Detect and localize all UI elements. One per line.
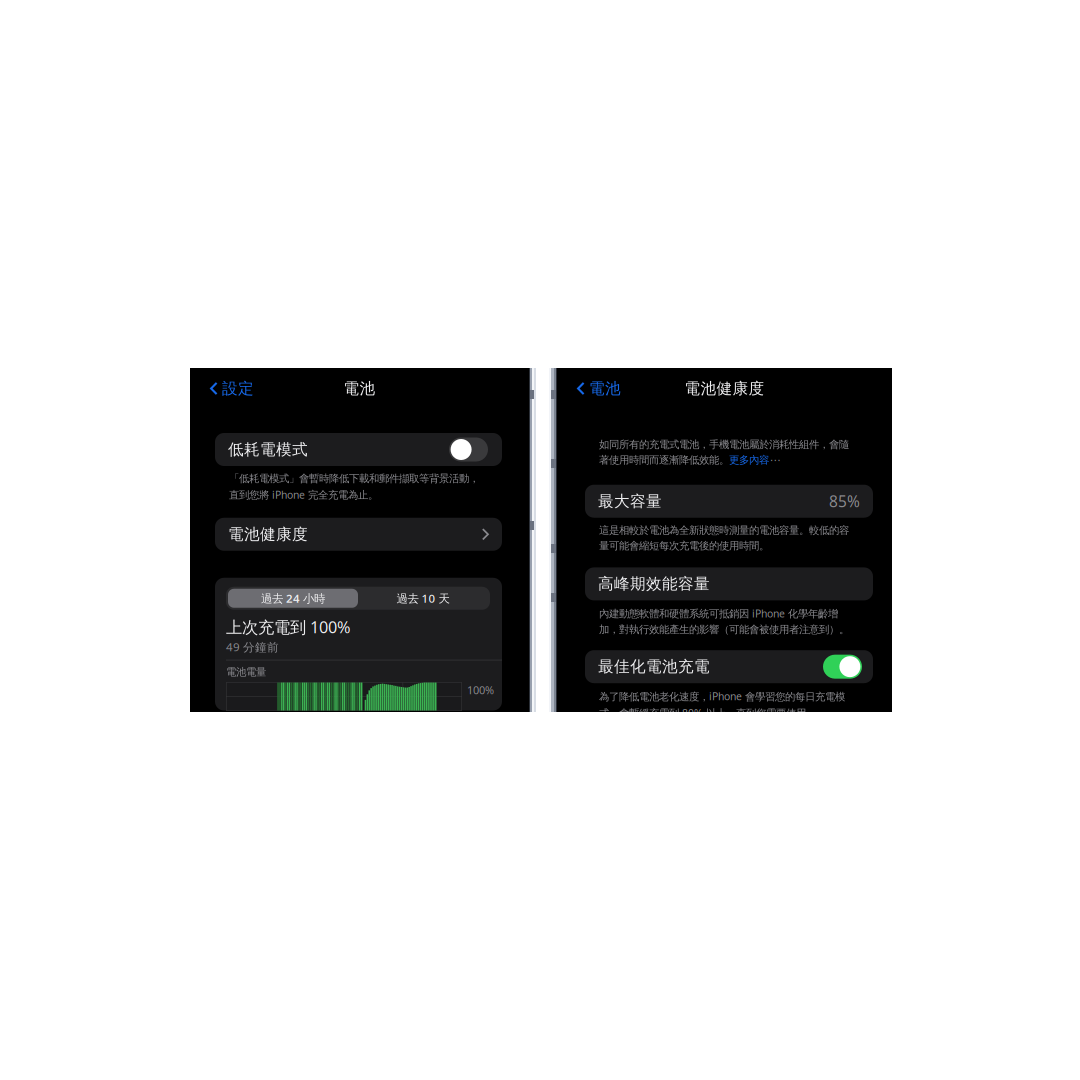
staticText: 高峰期效能容量 (598, 574, 710, 594)
button[interactable]: 電池 (557, 373, 629, 404)
button[interactable]: 低耗電模式 (190, 433, 529, 466)
staticText: 著使用時間而逐漸降低效能。 (599, 454, 729, 467)
staticText: 加，對執行效能產生的影響（可能會被使用者注意到）。 (599, 623, 849, 636)
staticText: 如同所有的充電式電池，手機電池屬於消耗性組件，會隨 (599, 438, 849, 451)
staticText: 直到您將 iPhone 完全充電為止。 (229, 488, 378, 502)
staticText: 這是相較於電池為全新狀態時測量的電池容量。較低的容 (599, 524, 849, 537)
staticText: 最佳化電池充電 (598, 657, 710, 676)
staticText: 電池健康度 (228, 524, 308, 544)
staticText: 設定 (222, 379, 254, 398)
staticText: 100% (467, 682, 494, 697)
staticText: 49 分鐘前 (226, 639, 279, 655)
button[interactable]: 設定 (190, 373, 262, 404)
staticText: 為了降低電池老化速度，iPhone 會學習您的每日充電模 (599, 689, 845, 703)
staticText: 上次充電到 100% (226, 616, 351, 638)
button[interactable]: 最大容量 (557, 485, 892, 518)
staticText: 電池健康度 (684, 379, 764, 398)
button[interactable]: 最佳化電池充電 (557, 650, 892, 683)
staticText: 最大容量 (598, 491, 662, 511)
staticText: 式，會暫緩充電到 80% 以上，直到您需要使用。 (599, 706, 816, 720)
staticText: ⋯ (770, 454, 780, 466)
staticText: 量可能會縮短每次充電後的使用時間。 (599, 539, 769, 552)
staticText: 低耗電模式 (228, 440, 308, 459)
staticText: 電池 (343, 379, 375, 398)
staticText: 內建動態軟體和硬體系統可抵銷因 iPhone 化學年齡增 (599, 606, 838, 621)
staticText: 電池電量 (226, 665, 266, 678)
staticText: 過去 24 小時 (261, 590, 325, 606)
button[interactable]: 過去 10 天 (358, 589, 488, 608)
button[interactable]: 過去 24 小時 (228, 589, 358, 608)
staticText: 更多內容 (729, 454, 769, 467)
staticText: 電池 (589, 379, 621, 398)
button[interactable]: 電池健康度 (190, 518, 529, 551)
staticText: 85% (829, 491, 860, 512)
staticText: 過去 10 天 (396, 590, 449, 606)
staticText: 「低耗電模式」會暫時降低下載和郵件擷取等背景活動， (229, 472, 479, 485)
button[interactable]: 更多內容 (729, 454, 769, 467)
button[interactable]: 高峰期效能容量 (557, 567, 892, 600)
